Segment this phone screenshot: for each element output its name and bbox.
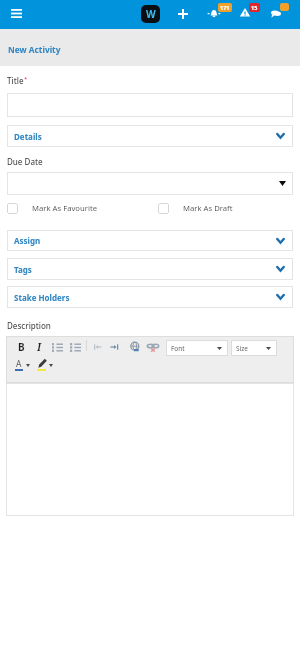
staticText: Font (171, 344, 185, 353)
staticText: Description (7, 320, 51, 331)
staticText: * (24, 75, 28, 83)
button[interactable]: Size (231, 340, 277, 356)
button[interactable]: Remove link (146, 340, 159, 353)
button[interactable]: Menu (5, 2, 27, 24)
button[interactable]: Indent (107, 340, 120, 353)
staticText: I (37, 340, 42, 354)
button[interactable]: Mark As Draft (158, 202, 233, 214)
button[interactable]: Numbered list (51, 340, 64, 353)
button[interactable]: Highlight colour (36, 358, 54, 375)
button[interactable]: Bullet list (69, 340, 82, 353)
button[interactable]: Notifications (206, 1, 230, 23)
button[interactable]: Assign (7, 230, 293, 251)
staticText: 15 (251, 4, 258, 11)
staticText: A (16, 358, 22, 370)
button[interactable]: Outdent (91, 340, 104, 353)
staticText: Title (7, 75, 24, 86)
staticText: Tags (14, 264, 32, 275)
button[interactable]: Workspace (141, 5, 160, 23)
staticText: W (146, 7, 156, 21)
button[interactable]: Messages (268, 1, 292, 23)
button[interactable]: Alerts (237, 1, 261, 23)
button[interactable]: B (14, 339, 28, 354)
staticText: Mark As Draft (183, 203, 233, 213)
staticText: B (18, 340, 25, 354)
button[interactable]: Tags (7, 258, 293, 280)
button[interactable]: Add (172, 3, 193, 24)
button[interactable]: Stake Holders (7, 286, 293, 308)
button[interactable]: Font (166, 340, 228, 356)
button[interactable]: Insert link (128, 340, 141, 353)
button[interactable]: I (32, 339, 46, 354)
button[interactable] (7, 93, 293, 117)
staticText: Assign (14, 235, 41, 246)
staticText: Size (236, 344, 248, 353)
button[interactable]: Text colour (14, 358, 32, 375)
staticText: Details (14, 131, 42, 142)
staticText: 171 (220, 4, 230, 11)
staticText: New Activity (8, 44, 61, 55)
button[interactable]: Details (7, 125, 293, 147)
button[interactable]: Mark As Favourite (7, 202, 98, 214)
button[interactable] (7, 172, 293, 195)
staticText: Due Date (7, 156, 43, 167)
staticText: Mark As Favourite (32, 203, 98, 213)
button[interactable] (6, 383, 294, 516)
staticText: Stake Holders (14, 292, 70, 303)
